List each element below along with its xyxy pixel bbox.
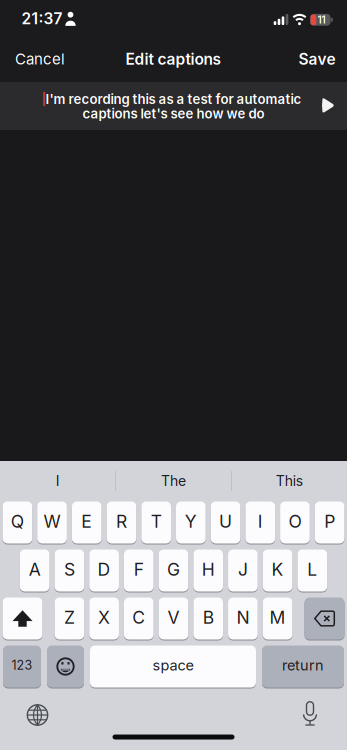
staticText: F: [134, 559, 144, 580]
button[interactable]: Z: [55, 597, 84, 640]
staticText: O: [288, 511, 301, 532]
staticText: I'm recording this as a test for automat…: [45, 91, 301, 107]
button[interactable]: I: [0, 461, 115, 501]
staticText: Z: [64, 607, 75, 628]
button[interactable]: U: [211, 501, 240, 544]
staticText: 21:37: [21, 9, 62, 28]
button[interactable]: Y: [176, 501, 206, 544]
button[interactable]: The: [116, 461, 231, 501]
button[interactable]: Delete: [304, 597, 344, 640]
staticText: L: [307, 559, 317, 580]
button[interactable]: N: [228, 597, 258, 640]
staticText: space: [152, 656, 193, 674]
staticText: 11: [317, 14, 325, 26]
button[interactable]: W: [37, 501, 67, 544]
staticText: N: [236, 607, 249, 628]
button[interactable]: J: [228, 549, 258, 592]
button[interactable]: T: [141, 501, 171, 544]
button[interactable]: L: [297, 549, 327, 592]
staticText: E: [81, 511, 92, 532]
staticText: H: [202, 559, 215, 580]
staticText: G: [167, 559, 180, 580]
staticText: K: [272, 559, 284, 580]
staticText: I: [258, 511, 263, 532]
button[interactable]: 123: [3, 645, 41, 688]
button[interactable]: Next keyboard: [19, 697, 55, 733]
button[interactable]: return: [262, 645, 344, 688]
button[interactable]: B: [193, 597, 223, 640]
staticText: B: [203, 607, 214, 628]
staticText: 123: [11, 658, 32, 673]
staticText: P: [324, 511, 335, 532]
staticText: V: [167, 607, 179, 628]
button[interactable]: Shift: [2, 597, 42, 640]
staticText: U: [219, 511, 232, 532]
staticText: A: [29, 559, 41, 580]
staticText: W: [44, 511, 61, 532]
button[interactable]: Q: [2, 501, 32, 544]
button[interactable]: G: [159, 549, 188, 592]
staticText: M: [270, 607, 286, 628]
button[interactable]: X: [89, 597, 119, 640]
button[interactable]: This: [232, 461, 347, 501]
button[interactable]: V: [159, 597, 188, 640]
button[interactable]: M: [263, 597, 292, 640]
button[interactable]: C: [124, 597, 154, 640]
staticText: return: [282, 656, 324, 674]
button[interactable]: Cancel: [4, 44, 76, 74]
staticText: J: [238, 559, 248, 580]
staticText: The: [161, 472, 186, 489]
staticText: Y: [185, 511, 197, 532]
staticText: Edit captions: [125, 50, 221, 68]
button[interactable]: I: [245, 501, 275, 544]
staticText: D: [98, 559, 111, 580]
button[interactable]: D: [89, 549, 119, 592]
button[interactable]: F: [124, 549, 154, 592]
button[interactable]: R: [107, 501, 136, 544]
button[interactable]: O: [280, 501, 310, 544]
button[interactable]: E: [72, 501, 102, 544]
staticText: R: [116, 511, 127, 532]
staticText: Q: [11, 511, 24, 532]
staticText: C: [132, 607, 145, 628]
button[interactable]: Play: [314, 91, 342, 119]
staticText: T: [151, 511, 162, 532]
button[interactable]: H: [193, 549, 223, 592]
staticText: S: [64, 559, 75, 580]
staticText: I: [56, 472, 60, 489]
button[interactable]: Dictation: [292, 696, 328, 732]
button[interactable]: Save: [292, 44, 342, 74]
button[interactable]: space: [90, 645, 256, 688]
button[interactable]: K: [263, 549, 292, 592]
button[interactable]: S: [55, 549, 84, 592]
button[interactable]: P: [315, 501, 344, 544]
staticText: This: [276, 472, 303, 489]
staticText: X: [98, 607, 110, 628]
button[interactable]: Emoji: [47, 645, 84, 688]
staticText: Cancel: [15, 50, 65, 68]
staticText: Save: [298, 50, 335, 68]
button[interactable]: A: [20, 549, 50, 592]
staticText: captions let's see how we do: [82, 106, 264, 122]
